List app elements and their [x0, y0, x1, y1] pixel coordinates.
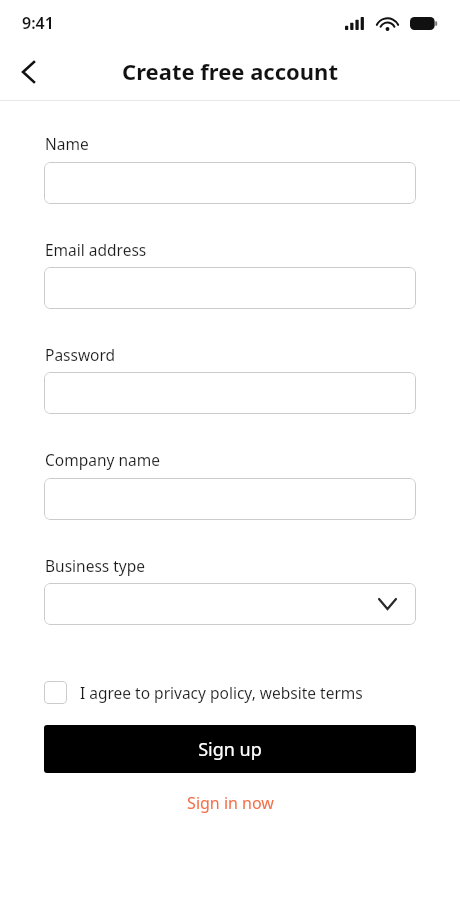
button[interactable]: Name [44, 162, 416, 204]
staticText: Email address [45, 239, 147, 260]
staticText: I agree to privacy policy, website terms [80, 682, 363, 703]
button[interactable]: Sign up [44, 725, 416, 773]
staticText: Name [45, 133, 89, 154]
staticText: Sign up [198, 737, 262, 762]
staticText: Company name [45, 449, 160, 470]
staticText: Business type [45, 555, 146, 576]
staticText: Sign in now [187, 792, 274, 814]
button[interactable]: Password [44, 372, 416, 414]
button[interactable]: Email address [44, 267, 416, 309]
button[interactable]: Sign in now [179, 789, 282, 817]
button[interactable]: Company name [44, 478, 416, 520]
staticText: 9:41 [22, 12, 54, 34]
button[interactable]: I agree to privacy policy, website terms [44, 676, 416, 708]
button[interactable]: Business type [44, 583, 416, 625]
button[interactable]: Back [6, 50, 50, 94]
staticText: Password [45, 344, 116, 365]
staticText: Create free account [122, 56, 338, 86]
